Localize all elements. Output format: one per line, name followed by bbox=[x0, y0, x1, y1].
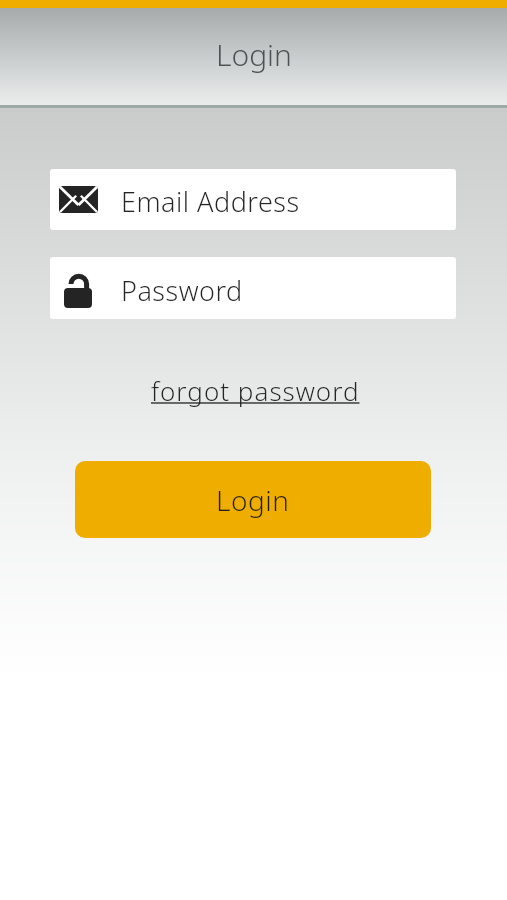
button[interactable]: Password bbox=[50, 257, 456, 319]
staticText: Login bbox=[216, 34, 292, 75]
staticText: Password bbox=[121, 272, 243, 309]
button[interactable]: forgot password bbox=[151, 373, 360, 408]
button[interactable]: Email Address bbox=[50, 169, 456, 230]
button[interactable]: Login bbox=[75, 461, 431, 538]
staticText: forgot password bbox=[151, 373, 360, 408]
staticText: Email Address bbox=[121, 183, 300, 220]
staticText: Login bbox=[216, 481, 290, 519]
